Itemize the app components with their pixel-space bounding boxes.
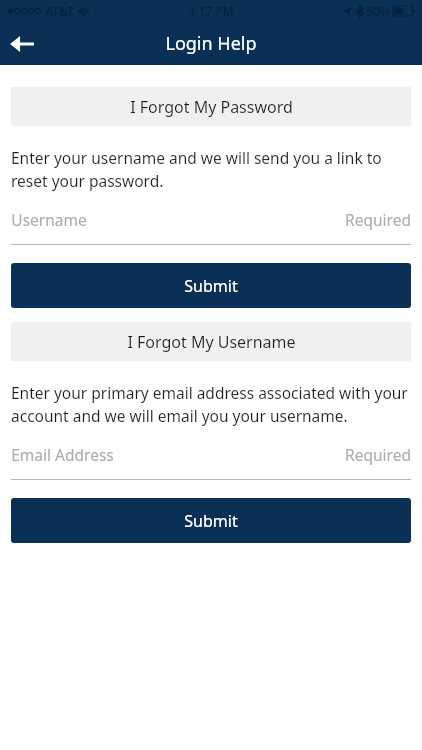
staticText: I Forgot My Password bbox=[130, 96, 293, 118]
staticText: 4:17 PM bbox=[188, 3, 234, 19]
button[interactable]: Email Address bbox=[11, 444, 411, 480]
button[interactable]: Username bbox=[11, 209, 411, 245]
staticText: Required bbox=[345, 209, 411, 230]
staticText: Username bbox=[11, 209, 87, 230]
button[interactable]: Submit bbox=[11, 263, 411, 308]
button[interactable]: I Forgot My Password bbox=[11, 87, 411, 126]
staticText: AT&T bbox=[45, 3, 74, 19]
staticText: Email Address bbox=[11, 444, 114, 465]
staticText: Required bbox=[345, 444, 411, 465]
staticText: Enter your primary email address associa… bbox=[11, 382, 411, 427]
staticText: 50% bbox=[366, 3, 390, 19]
button[interactable]: I Forgot My Username bbox=[11, 322, 411, 361]
staticText: Submit bbox=[184, 275, 238, 297]
button[interactable]: Submit bbox=[11, 498, 411, 543]
staticText: Login Help bbox=[165, 31, 257, 56]
button[interactable]: Back bbox=[0, 22, 44, 65]
staticText: Enter your username and we will send you… bbox=[11, 147, 411, 192]
staticText: Submit bbox=[184, 510, 238, 532]
staticText: I Forgot My Username bbox=[127, 331, 296, 353]
